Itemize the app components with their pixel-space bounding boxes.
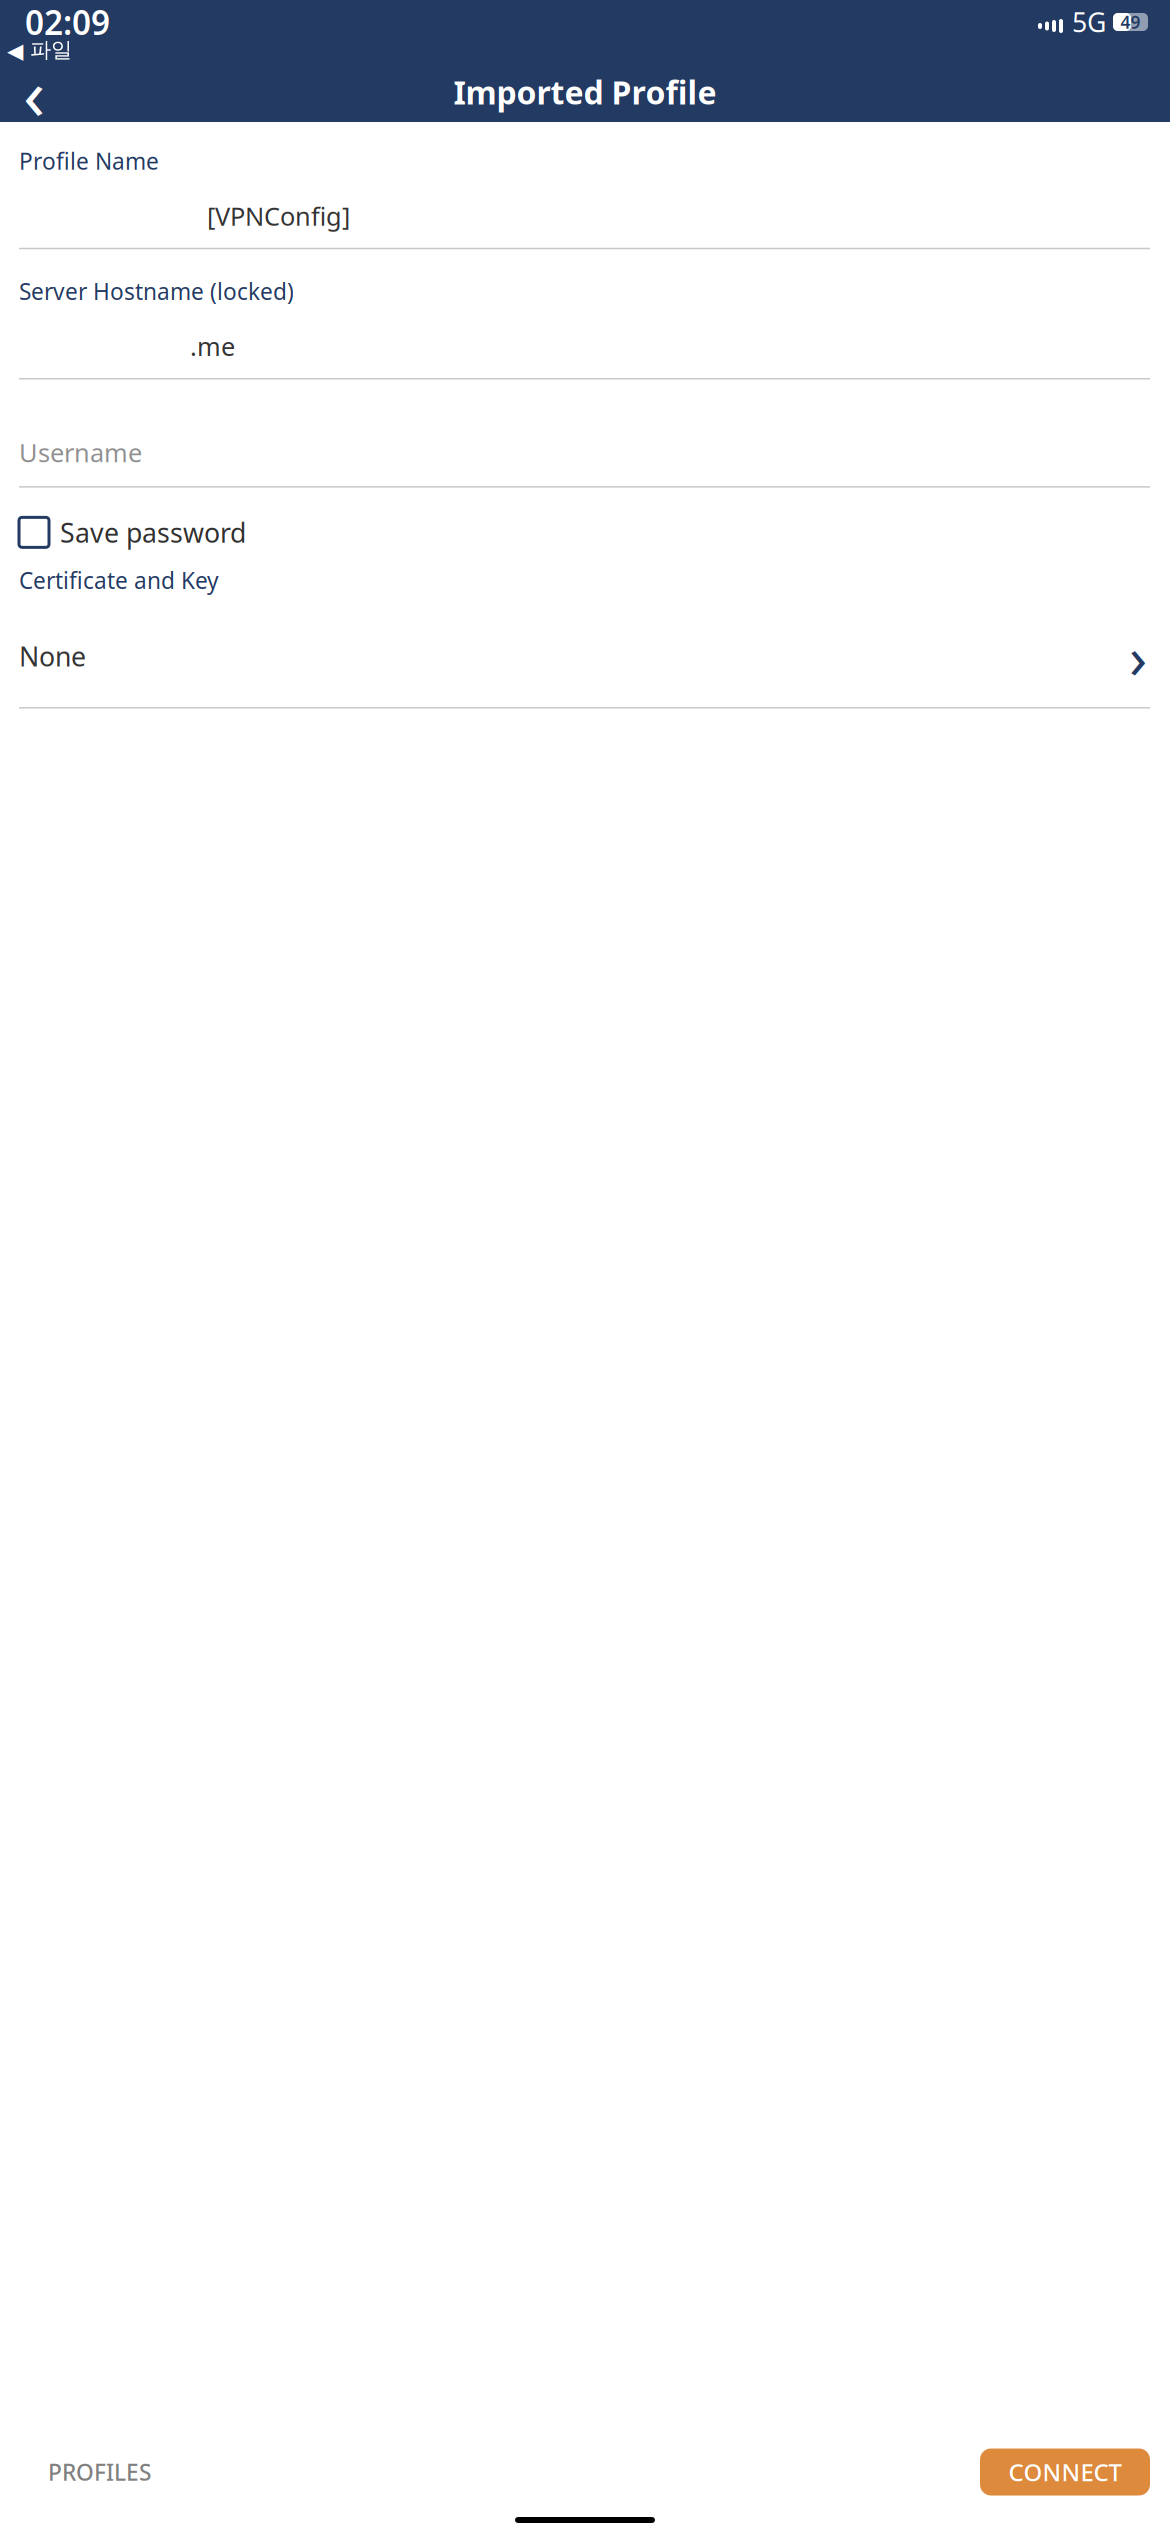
button[interactable]: Save password — [19, 512, 246, 553]
staticText: Profile Name — [19, 146, 159, 176]
staticText: ‹ — [23, 44, 45, 140]
button[interactable]: CONNECT — [980, 2448, 1150, 2495]
staticText: [VPNConfig] — [207, 199, 350, 233]
staticText: Username — [19, 435, 142, 469]
staticText: › — [1129, 617, 1147, 695]
staticText: Server Hostname (locked) — [19, 276, 294, 306]
button[interactable]: PROFILES — [12, 2448, 187, 2496]
button[interactable]: None — [19, 617, 1150, 708]
staticText: CONNECT — [1008, 2456, 1121, 2488]
staticText: 02:09 — [25, 0, 110, 44]
button[interactable]: Back — [6, 64, 62, 120]
staticText: None — [19, 638, 86, 674]
staticText: PROFILES — [48, 2457, 151, 2487]
staticText: Certificate and Key — [19, 565, 219, 595]
staticText: Imported Profile — [453, 71, 716, 113]
staticText: 5G — [1072, 4, 1106, 40]
staticText: 49 — [1120, 10, 1140, 33]
staticText: ◀ 파일 — [7, 37, 72, 63]
staticText: Save password — [60, 515, 246, 550]
staticText: .me — [190, 329, 235, 363]
